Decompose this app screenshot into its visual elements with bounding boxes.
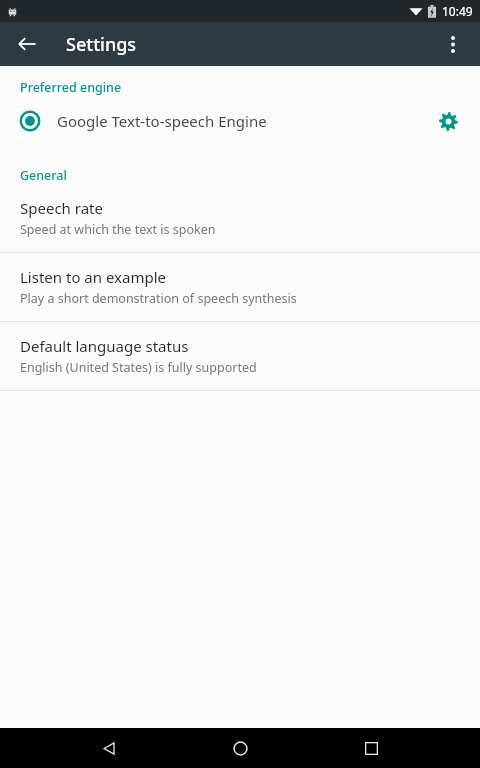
staticText: Google Text-to-speech Engine: [57, 111, 424, 131]
staticText: Play a short demonstration of speech syn…: [20, 290, 297, 307]
button[interactable]: Navigate up: [5, 22, 49, 66]
button[interactable]: Speech rate: [0, 184, 480, 252]
staticText: English (United States) is fully support…: [20, 359, 257, 376]
button[interactable]: Back: [87, 728, 131, 768]
staticText: Listen to an example: [20, 267, 167, 287]
button[interactable]: Recent apps: [349, 728, 393, 768]
button[interactable]: More options: [431, 22, 475, 66]
button[interactable]: Home: [218, 728, 262, 768]
staticText: General: [20, 167, 67, 184]
staticText: Default language status: [20, 336, 189, 356]
button[interactable]: Engine settings: [424, 97, 472, 145]
staticText: Speed at which the text is spoken: [20, 221, 216, 238]
staticText: Settings: [66, 32, 137, 57]
staticText: Preferred engine: [20, 79, 122, 96]
button[interactable]: Default language status: [0, 322, 480, 390]
staticText: Speech rate: [20, 198, 103, 218]
button[interactable]: Listen to an example: [0, 253, 480, 321]
button[interactable]: Google Text-to-speech Engine: [0, 96, 480, 146]
staticText: 10:49: [442, 3, 473, 19]
